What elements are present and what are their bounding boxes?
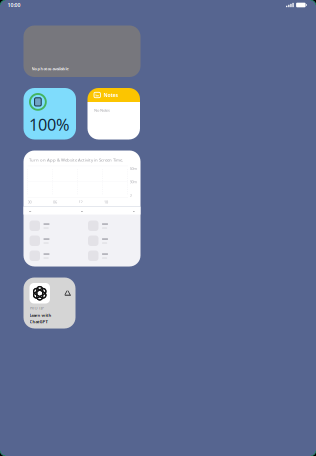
staticText: No Notes: [94, 107, 110, 113]
button[interactable]: 100%: [23, 88, 76, 139]
button[interactable]: PRO TIP: [23, 277, 75, 328]
staticText: 12: [78, 199, 82, 205]
staticText: 10:00: [7, 1, 20, 9]
staticText: No photos available: [31, 66, 68, 71]
staticText: --: [132, 208, 134, 213]
staticText: ChatGPT: [29, 319, 47, 324]
staticText: 06: [53, 199, 57, 205]
staticText: Learn with: [29, 312, 51, 318]
staticText: 00: [27, 199, 31, 205]
button[interactable]: Turn on App & Website Activity in Screen…: [23, 150, 140, 266]
staticText: 100%: [29, 113, 70, 135]
staticText: --: [81, 208, 83, 213]
staticText: Turn on App & Website Activity in Screen…: [29, 157, 123, 163]
button[interactable]: No photos available: [23, 25, 140, 77]
staticText: 30m: [129, 179, 137, 184]
staticText: PRO TIP: [29, 305, 43, 311]
staticText: 18: [104, 199, 108, 205]
staticText: 60m: [129, 166, 137, 171]
staticText: 0: [129, 192, 131, 198]
staticText: Notes: [103, 92, 117, 98]
staticText: --: [29, 208, 31, 213]
button[interactable]: Notes: [87, 88, 140, 139]
